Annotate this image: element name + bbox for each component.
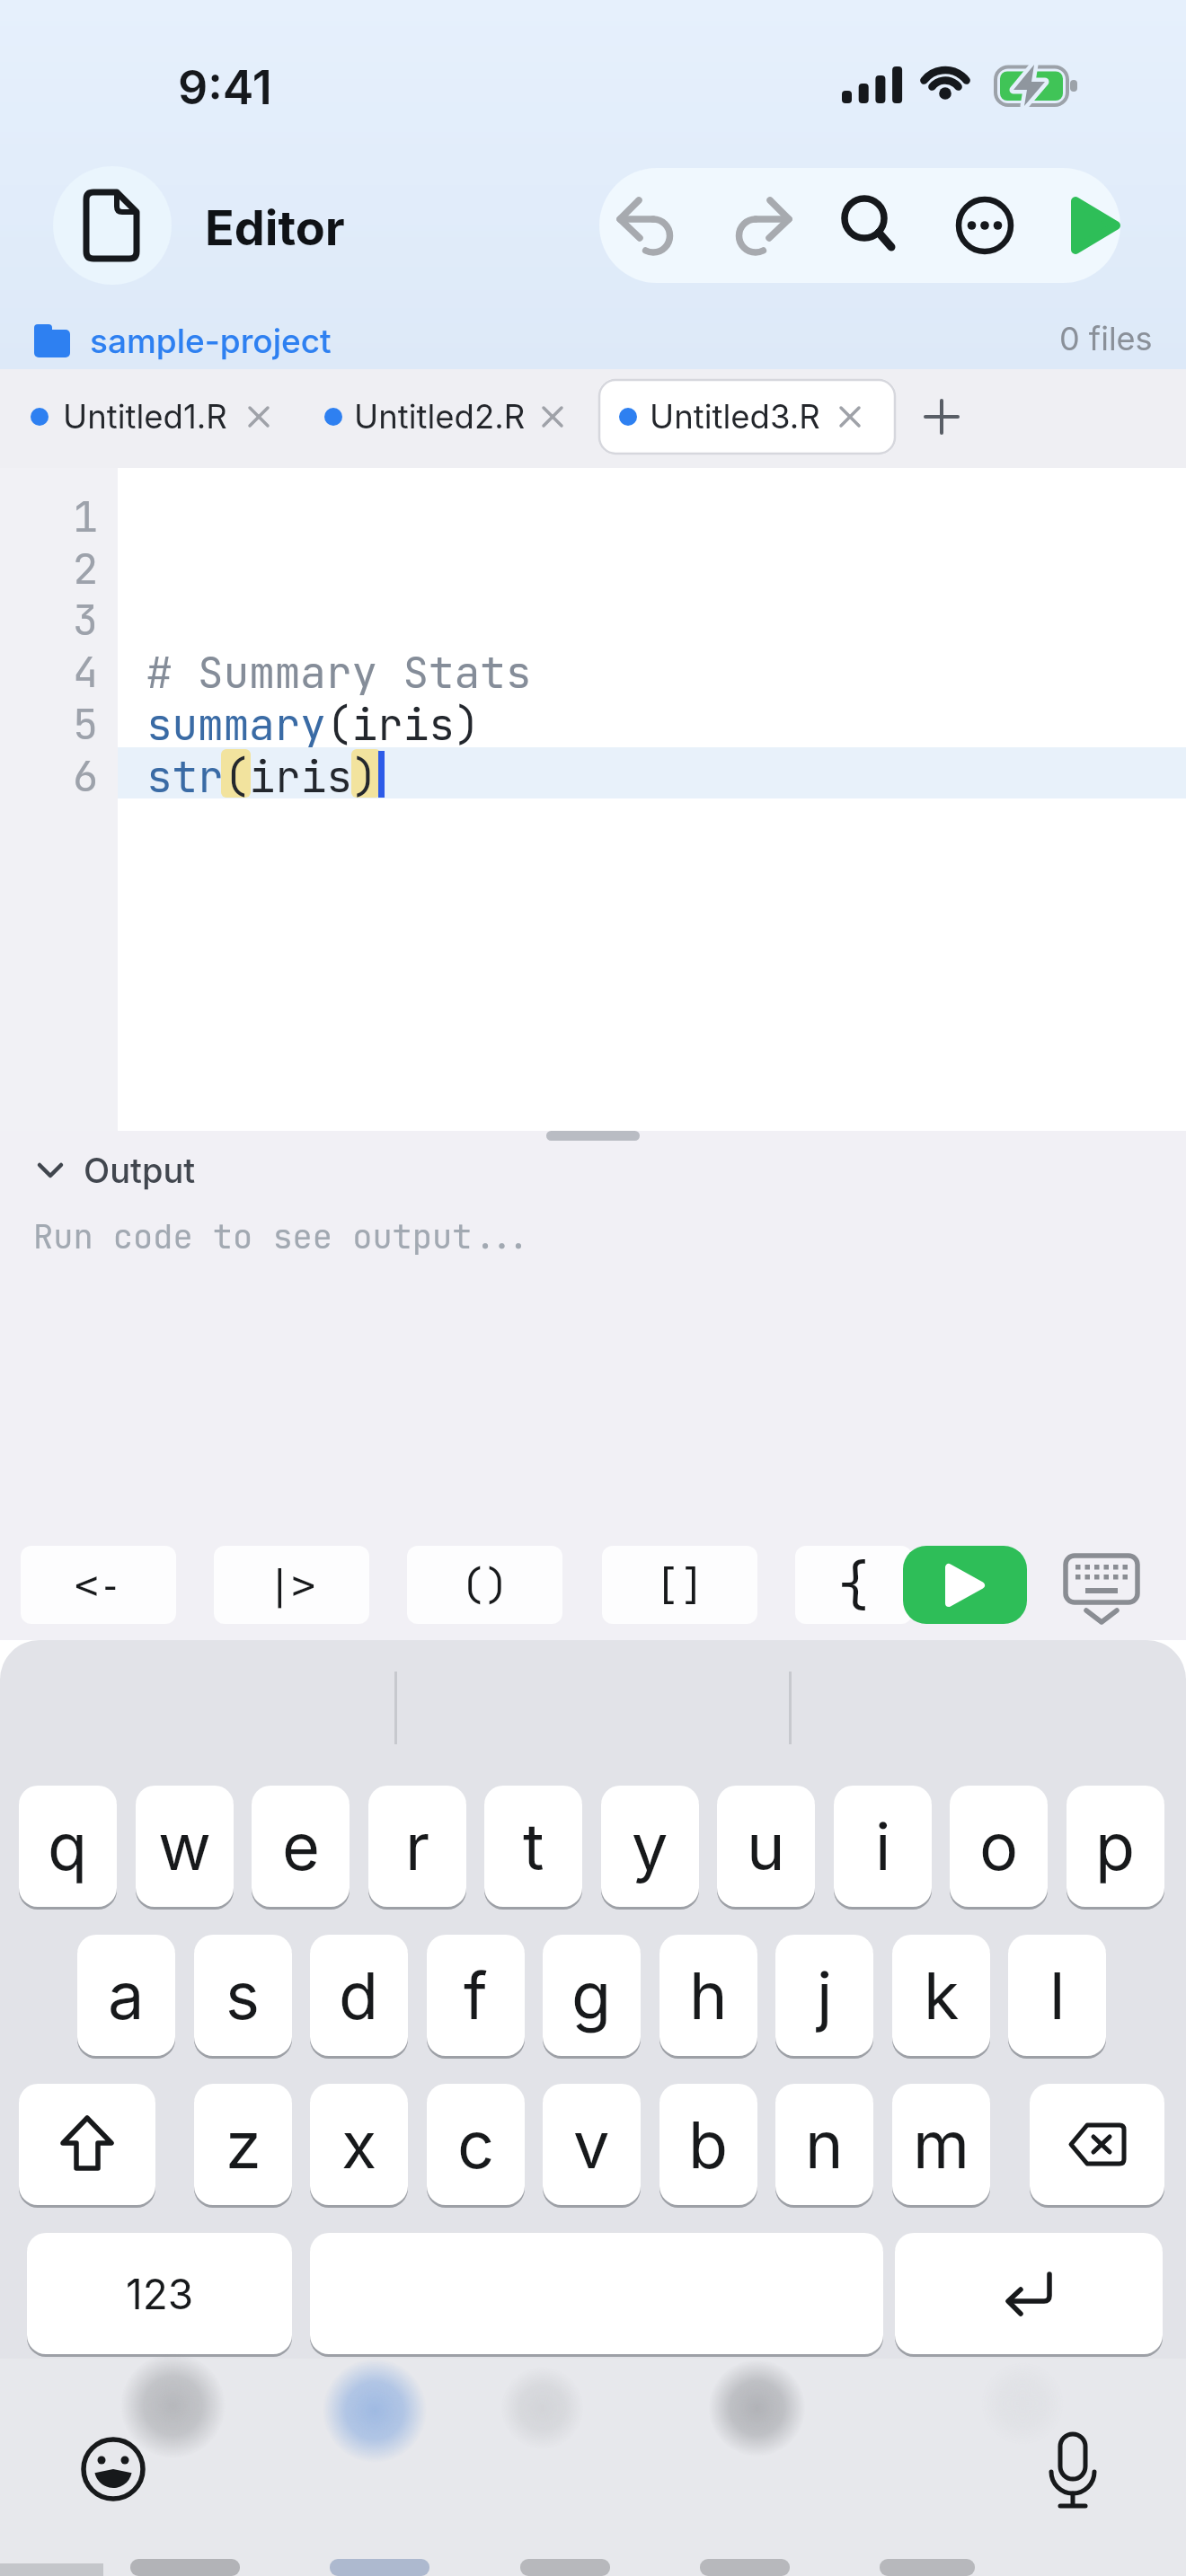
button[interactable]: o	[950, 1786, 1048, 1907]
button[interactable]	[954, 195, 1015, 256]
button[interactable]: t	[484, 1786, 582, 1907]
staticText: d	[339, 1956, 379, 2034]
button[interactable]	[19, 2084, 155, 2205]
staticText: y	[632, 1807, 668, 1885]
button[interactable]	[1040, 2430, 1105, 2512]
staticText: 9:41	[178, 59, 272, 116]
staticText: r	[405, 1807, 430, 1885]
button[interactable]	[1063, 1552, 1142, 1628]
staticText: Editor	[205, 198, 345, 257]
staticText: f	[464, 1956, 488, 2034]
button[interactable]	[836, 193, 900, 258]
staticText: s	[226, 1956, 261, 2034]
button[interactable]: <-	[21, 1546, 176, 1624]
button[interactable]	[32, 1150, 266, 1191]
button[interactable]: ()	[407, 1546, 562, 1624]
staticText: t	[523, 1807, 544, 1885]
staticText: (iris)	[224, 748, 378, 799]
staticText: q	[48, 1807, 88, 1885]
button[interactable]	[598, 379, 896, 454]
staticText: g	[571, 1956, 612, 2034]
staticText: 4	[73, 644, 99, 695]
staticText: o	[979, 1807, 1019, 1885]
button[interactable]: z	[194, 2084, 292, 2205]
staticText: Untitled1.R	[63, 397, 227, 437]
staticText: v	[573, 2105, 610, 2183]
button[interactable]: i	[834, 1786, 932, 1907]
button[interactable]: w	[136, 1786, 234, 1907]
button[interactable]: s	[194, 1935, 292, 2056]
button[interactable]: x	[310, 2084, 408, 2205]
button[interactable]: g	[543, 1935, 641, 2056]
staticText: str	[146, 748, 224, 799]
button[interactable]	[1071, 197, 1120, 254]
button[interactable]	[903, 1546, 1027, 1624]
staticText: m	[913, 2105, 970, 2183]
staticText: 5	[73, 696, 99, 747]
staticText: Untitled3.R	[650, 397, 820, 437]
button[interactable]: |>	[214, 1546, 369, 1624]
button[interactable]: k	[892, 1935, 990, 2056]
button[interactable]: d	[310, 1935, 408, 2056]
staticText: (iris)	[326, 696, 481, 747]
staticText: {	[837, 1549, 870, 1620]
button[interactable]: e	[252, 1786, 350, 1907]
button[interactable]	[81, 2437, 146, 2501]
staticText: 2	[73, 541, 99, 592]
staticText: j	[817, 1956, 833, 2034]
staticText: |>	[268, 1562, 315, 1608]
button[interactable]: h	[659, 1935, 757, 2056]
button[interactable]	[1030, 2084, 1164, 2205]
button[interactable]: m	[892, 2084, 990, 2205]
button[interactable]	[244, 402, 273, 431]
staticText: x	[341, 2105, 377, 2183]
button[interactable]: []	[602, 1546, 757, 1624]
button[interactable]: c	[427, 2084, 525, 2205]
staticText: 3	[73, 592, 99, 643]
button[interactable]: 123	[27, 2233, 292, 2354]
staticText: w	[158, 1807, 211, 1885]
staticText: 123	[126, 2269, 194, 2319]
button[interactable]: q	[19, 1786, 117, 1907]
button[interactable]: r	[368, 1786, 466, 1907]
button[interactable]	[924, 399, 960, 435]
staticText: e	[282, 1807, 320, 1885]
button[interactable]: a	[77, 1935, 175, 2056]
staticText: <-	[75, 1562, 122, 1608]
button[interactable]: f	[427, 1935, 525, 2056]
staticText: summary	[146, 696, 326, 747]
staticText: k	[924, 1956, 960, 2034]
button[interactable]: {	[795, 1546, 912, 1624]
staticText: c	[457, 2105, 495, 2183]
staticText: b	[688, 2105, 729, 2183]
staticText: n	[805, 2105, 844, 2183]
staticText: Untitled2.R	[354, 397, 526, 437]
staticText: []	[656, 1559, 704, 1611]
staticText: Run code to see output...	[33, 1214, 532, 1257]
staticText: 6	[73, 748, 99, 799]
button[interactable]	[538, 402, 567, 431]
button[interactable]: n	[775, 2084, 873, 2205]
button[interactable]: p	[1067, 1786, 1164, 1907]
staticText: a	[108, 1956, 145, 2034]
button[interactable]: j	[775, 1935, 873, 2056]
staticText: u	[747, 1807, 785, 1885]
button[interactable]: v	[543, 2084, 641, 2205]
staticText: 1	[73, 489, 99, 540]
staticText: l	[1049, 1956, 1066, 2034]
staticText: Output	[84, 1150, 196, 1191]
button[interactable]: y	[601, 1786, 699, 1907]
button[interactable]	[617, 194, 680, 257]
button[interactable]: u	[717, 1786, 815, 1907]
staticText: z	[226, 2105, 261, 2183]
staticText: h	[689, 1956, 728, 2034]
button[interactable]	[729, 194, 792, 257]
button[interactable]	[53, 166, 172, 285]
staticText: i	[875, 1807, 891, 1885]
button[interactable]: l	[1008, 1935, 1106, 2056]
button[interactable]: b	[659, 2084, 757, 2205]
button[interactable]	[836, 402, 864, 431]
button[interactable]	[895, 2233, 1163, 2354]
staticText: 0 files	[1059, 319, 1153, 358]
